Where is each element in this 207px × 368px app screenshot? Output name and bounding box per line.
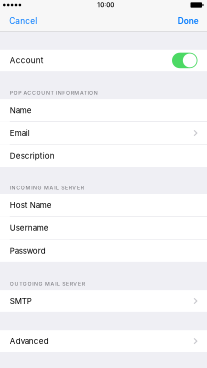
staticText: OUTGOING MAIL SERVER [10, 280, 85, 287]
staticText: Email [10, 128, 30, 138]
button[interactable]: Name [0, 99, 207, 121]
button[interactable]: Account [0, 50, 207, 71]
button[interactable]: Password [0, 240, 207, 262]
button[interactable]: Cancel [0, 10, 45, 32]
staticText: Cancel [9, 16, 37, 26]
staticText: Host Name [10, 200, 52, 210]
button[interactable]: Advanced [0, 330, 207, 352]
button[interactable]: Email [0, 122, 207, 144]
button[interactable]: Host Name [0, 194, 207, 216]
staticText: Name [10, 105, 32, 115]
staticText: Description [10, 151, 55, 161]
button[interactable]: Description [0, 145, 207, 167]
button[interactable]: Done [170, 10, 207, 32]
staticText: Password [10, 246, 46, 256]
staticText: SMTP [10, 296, 32, 306]
staticText: Advanced [10, 336, 49, 346]
staticText: Account [10, 56, 44, 65]
button[interactable]: SMTP [0, 290, 207, 312]
button[interactable]: Username [0, 217, 207, 239]
staticText: Done [178, 16, 199, 26]
staticText: POP ACCOUNT INFORMATION [10, 89, 98, 96]
staticText: INCOMING MAIL SERVER [10, 184, 84, 191]
staticText: Username [10, 223, 49, 233]
staticText: 10:00 [97, 1, 114, 9]
